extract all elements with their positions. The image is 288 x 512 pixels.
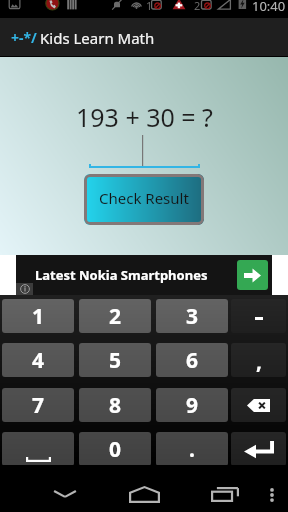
staticText: 0: [109, 435, 122, 464]
staticText: .: [189, 435, 195, 464]
button[interactable]: minus: [231, 299, 286, 333]
staticText: 4: [32, 346, 45, 375]
button[interactable]: 2: [79, 299, 151, 333]
button[interactable]: Back: [41, 475, 89, 512]
button[interactable]: Latest Nokia Smartphones: [16, 255, 272, 295]
staticText: Check Result: [99, 188, 189, 208]
button[interactable]: comma: [231, 343, 286, 377]
button[interactable]: 5: [79, 343, 151, 377]
button[interactable]: bksp: [231, 388, 286, 422]
button[interactable]: .: [156, 432, 228, 466]
staticText: 1: [146, 0, 153, 13]
button[interactable]: 6: [156, 343, 228, 377]
button[interactable]: Open advertisement: [237, 260, 268, 290]
button[interactable]: 1: [2, 299, 74, 333]
button[interactable]: Kids Learn Math: [0, 18, 160, 57]
button[interactable]: Check Result: [84, 174, 204, 225]
staticText: 2: [194, 0, 201, 13]
button[interactable]: space: [2, 432, 74, 466]
staticText: 6: [186, 346, 199, 375]
staticText: 7: [32, 391, 45, 420]
button[interactable]: 8: [79, 388, 151, 422]
button[interactable]: Recent apps: [197, 475, 253, 512]
staticText: +-*/: [11, 28, 37, 47]
button[interactable]: 9: [156, 388, 228, 422]
staticText: ,: [256, 347, 262, 376]
staticText: Kids Learn Math: [40, 28, 155, 48]
button[interactable]: 0: [79, 432, 151, 466]
staticText: 8: [109, 391, 122, 420]
button[interactable]: Home: [114, 475, 174, 512]
button[interactable]: Ad information: [16, 283, 33, 295]
button[interactable]: 4: [2, 343, 74, 377]
staticText: Latest Nokia Smartphones: [35, 266, 208, 284]
staticText: 5: [109, 346, 122, 375]
button[interactable]: 3: [156, 299, 228, 333]
staticText: 2: [109, 302, 122, 331]
button[interactable]: enter: [231, 432, 286, 466]
staticText: 3: [186, 302, 199, 331]
button[interactable]: 7: [2, 388, 74, 422]
staticText: 193 + 30 = ?: [76, 100, 213, 134]
staticText: 9: [186, 391, 199, 420]
button[interactable]: More options: [255, 475, 288, 512]
staticText: 10:40: [252, 0, 286, 15]
staticText: 1: [32, 302, 45, 331]
